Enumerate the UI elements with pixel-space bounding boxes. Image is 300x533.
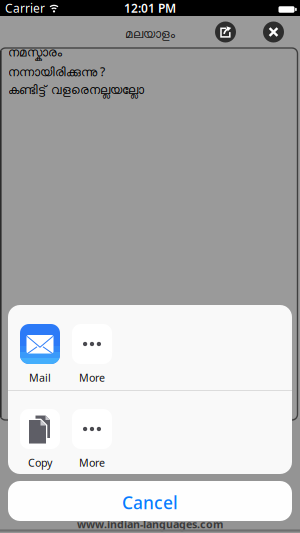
button[interactable]: Close bbox=[263, 21, 284, 42]
button[interactable]: More sharing options bbox=[62, 324, 122, 385]
staticText: www.indian-languages.com bbox=[77, 517, 223, 531]
staticText: Copy bbox=[28, 455, 52, 470]
staticText: നമസ്കാരം bbox=[8, 47, 62, 59]
staticText: Cancel bbox=[122, 491, 178, 514]
staticText: മലയാളം bbox=[125, 29, 175, 40]
button[interactable]: Copy bbox=[10, 409, 70, 470]
staticText: കണ്ടിട്ട് വളരെനല്ലയല്ലോ bbox=[8, 85, 144, 96]
staticText: Mail bbox=[29, 370, 51, 385]
button[interactable]: Cancel bbox=[8, 481, 292, 521]
staticText: നന്നായിരിക്കുന്നു ? bbox=[8, 64, 105, 80]
staticText: More bbox=[79, 370, 105, 385]
button[interactable]: Share bbox=[215, 21, 236, 42]
staticText: More bbox=[79, 455, 105, 470]
staticText: 12:01 PM bbox=[124, 0, 176, 16]
button[interactable]: Mail bbox=[10, 324, 70, 385]
staticText: Carrier bbox=[5, 0, 45, 16]
button[interactable]: More actions bbox=[62, 409, 122, 470]
